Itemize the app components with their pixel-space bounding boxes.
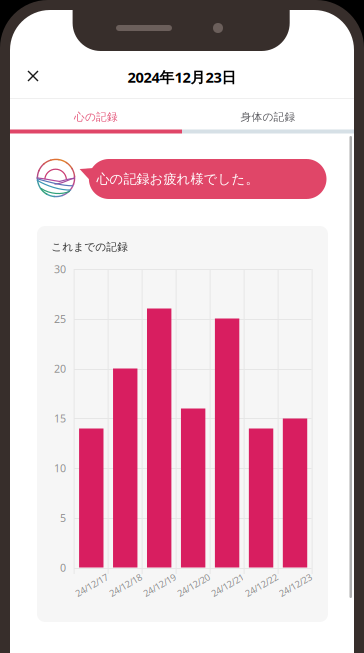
staticText: 24/12/19 xyxy=(141,579,177,591)
staticText: 身体の記録 xyxy=(240,110,295,123)
staticText: 20 xyxy=(54,361,66,376)
staticText: 24/12/17 xyxy=(74,579,110,591)
staticText: 24/12/23 xyxy=(277,579,313,591)
button[interactable]: Close xyxy=(16,59,50,93)
button[interactable]: 心の記録 xyxy=(10,102,182,132)
staticText: 24/12/21 xyxy=(209,579,245,591)
staticText: 24/12/22 xyxy=(243,579,279,591)
staticText: 10 xyxy=(54,461,66,475)
staticText: 心の記録 xyxy=(74,110,118,123)
staticText: 25 xyxy=(54,312,66,326)
staticText: 15 xyxy=(54,411,66,425)
staticText: 24/12/18 xyxy=(107,579,143,591)
staticText: これまでの記録 xyxy=(51,240,128,253)
staticText: 30 xyxy=(54,262,66,276)
staticText: 24/12/20 xyxy=(175,579,211,591)
staticText: 0 xyxy=(60,560,66,575)
staticText: 心の記録お疲れ様でした。 xyxy=(96,171,258,187)
staticText: 2024年12月23日 xyxy=(127,67,236,87)
staticText: 5 xyxy=(60,511,66,525)
button[interactable]: 身体の記録 xyxy=(182,102,354,132)
